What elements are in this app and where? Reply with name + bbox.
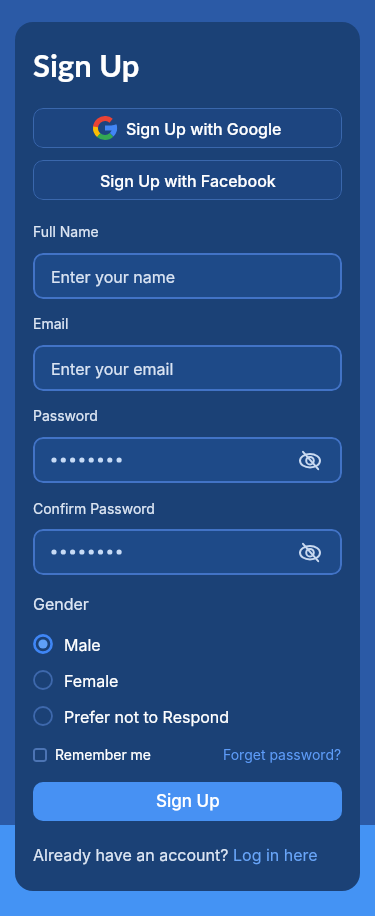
- staticText: Remember me: [55, 746, 152, 763]
- staticText: Sign Up with Google: [126, 119, 282, 138]
- staticText: Gender: [33, 594, 89, 613]
- button[interactable]: [33, 437, 342, 483]
- staticText: Password: [33, 407, 98, 424]
- staticText: Full Name: [33, 223, 99, 240]
- button[interactable]: Female: [33, 666, 313, 694]
- button[interactable]: Sign Up: [33, 782, 342, 821]
- staticText: Sign Up with Facebook: [100, 171, 276, 190]
- staticText: Sign Up: [33, 46, 140, 83]
- staticText: Prefer not to Respond: [64, 707, 230, 726]
- staticText: Confirm Password: [33, 500, 155, 517]
- staticText: Sign Up: [156, 791, 220, 812]
- button[interactable]: Sign Up with Google: [33, 108, 342, 148]
- staticText: Female: [64, 671, 119, 690]
- button[interactable]: Male: [33, 630, 313, 658]
- button[interactable]: [33, 529, 342, 575]
- staticText: Already have an account?: [33, 845, 233, 864]
- staticText: Enter your name: [51, 267, 176, 286]
- staticText: Male: [64, 635, 101, 654]
- button[interactable]: Sign Up with Facebook: [33, 160, 342, 200]
- button[interactable]: Prefer not to Respond: [33, 702, 313, 730]
- staticText: Enter your email: [51, 359, 174, 378]
- staticText: Email: [33, 315, 69, 332]
- button[interactable]: Enter your name: [33, 253, 342, 299]
- button[interactable]: Forget password?: [223, 746, 342, 763]
- button[interactable]: Log in here: [233, 845, 318, 864]
- button[interactable]: Enter your email: [33, 345, 342, 391]
- button[interactable]: Remember me: [33, 746, 152, 763]
